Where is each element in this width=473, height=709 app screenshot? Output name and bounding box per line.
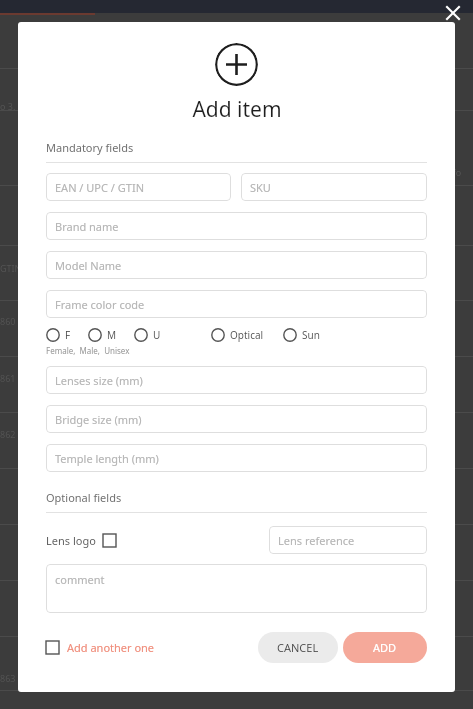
staticText: 862 bbox=[0, 428, 16, 440]
staticText: Lenses size (mm) bbox=[55, 373, 143, 388]
staticText: Optical bbox=[230, 328, 264, 342]
button[interactable]: Model Name bbox=[46, 251, 427, 279]
staticText: Model Name bbox=[55, 258, 122, 273]
staticText: Sun bbox=[302, 328, 320, 342]
staticText: CANCEL bbox=[277, 640, 319, 655]
button[interactable]: U bbox=[134, 328, 161, 342]
staticText: Optional fields bbox=[46, 490, 122, 505]
button[interactable]: Add bbox=[215, 43, 258, 86]
button[interactable]: F bbox=[46, 328, 71, 342]
button[interactable]: Close bbox=[440, 0, 466, 26]
staticText: Female, Male, Unisex bbox=[46, 345, 130, 356]
button[interactable]: Frame color code bbox=[46, 290, 427, 318]
staticText: ADD bbox=[373, 640, 397, 655]
staticText: Add item bbox=[192, 95, 282, 124]
staticText: nfo bbox=[447, 166, 462, 178]
staticText: 861 bbox=[0, 372, 16, 384]
button[interactable]: M bbox=[88, 328, 117, 342]
staticText: U bbox=[153, 328, 161, 342]
button[interactable]: Bridge size (mm) bbox=[46, 405, 427, 433]
button[interactable]: Temple length (mm) bbox=[46, 444, 427, 472]
staticText: Frame color code bbox=[55, 297, 145, 312]
staticText: 863 bbox=[0, 672, 16, 684]
staticText: GTIN bbox=[0, 262, 22, 274]
staticText: Mandatory fields bbox=[46, 140, 134, 155]
button[interactable]: Add another one bbox=[46, 640, 155, 655]
staticText: SKU bbox=[250, 180, 271, 195]
staticText: Lens reference bbox=[278, 533, 355, 548]
button[interactable]: CANCEL bbox=[258, 632, 338, 663]
staticText: M bbox=[107, 328, 117, 342]
button[interactable]: Optical bbox=[211, 328, 264, 342]
button[interactable]: Lenses size (mm) bbox=[46, 366, 427, 394]
staticText: Add another one bbox=[67, 640, 155, 655]
staticText: Bridge size (mm) bbox=[55, 412, 142, 427]
button[interactable]: Sun bbox=[283, 328, 320, 342]
staticText: EAN / UPC / GTIN bbox=[55, 180, 144, 195]
staticText: o 3. bbox=[0, 100, 16, 112]
button[interactable]: Lens logo bbox=[46, 533, 116, 548]
staticText: DELIVERY bbox=[120, 0, 166, 14]
button[interactable]: comment bbox=[46, 564, 427, 613]
staticText: Temple length (mm) bbox=[55, 451, 159, 466]
button[interactable]: Brand name bbox=[46, 212, 427, 240]
button[interactable]: EAN / UPC / GTIN bbox=[46, 173, 231, 201]
staticText: Lens logo bbox=[46, 533, 96, 548]
staticText: comment bbox=[55, 572, 105, 587]
button[interactable]: SKU bbox=[241, 173, 427, 201]
button[interactable]: Lens reference bbox=[269, 526, 427, 554]
staticText: F bbox=[65, 328, 71, 342]
staticText: Brand name bbox=[55, 219, 119, 234]
button[interactable]: ADD bbox=[343, 632, 427, 663]
staticText: 860 bbox=[0, 315, 16, 327]
